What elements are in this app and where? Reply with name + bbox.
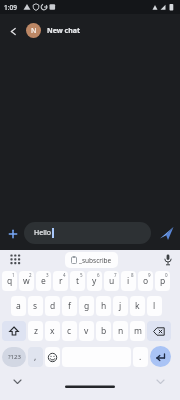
button[interactable]	[163, 254, 173, 266]
button[interactable]: y	[87, 271, 102, 291]
staticText: p	[160, 275, 166, 287]
button[interactable]	[150, 346, 171, 367]
staticText: _subscribe	[79, 256, 112, 265]
staticText: 1	[12, 272, 15, 278]
staticText: c	[67, 325, 72, 337]
staticText: Hello	[34, 228, 51, 238]
button[interactable]: o	[138, 271, 153, 291]
staticText: n	[118, 325, 124, 337]
staticText: h	[101, 300, 107, 312]
staticText: x	[50, 325, 55, 337]
button[interactable]: h	[96, 296, 111, 316]
staticText: 0	[165, 272, 168, 278]
button[interactable]: ?123	[2, 347, 26, 367]
staticText: ,	[34, 351, 37, 363]
staticText: t	[76, 275, 80, 287]
staticText: b	[101, 325, 107, 337]
staticText: w	[23, 275, 30, 287]
staticText: v	[84, 325, 89, 337]
button[interactable]: Hello	[24, 222, 151, 244]
button[interactable]: q	[2, 271, 17, 291]
button[interactable]: f	[62, 296, 77, 316]
button[interactable]: u	[104, 271, 119, 291]
staticText: l	[153, 300, 156, 312]
staticText: u	[109, 275, 115, 287]
button[interactable]: p	[155, 271, 170, 291]
button[interactable]	[6, 24, 20, 38]
button[interactable]	[45, 347, 60, 367]
staticText: q	[7, 275, 13, 287]
button[interactable]: t	[70, 271, 85, 291]
staticText: 4	[63, 272, 66, 278]
staticText: k	[135, 300, 140, 312]
button[interactable]: k	[130, 296, 145, 316]
button[interactable]: a	[11, 296, 26, 316]
staticText: s	[33, 300, 38, 312]
button[interactable]: N	[26, 23, 41, 38]
button[interactable]: _subscribe	[65, 252, 118, 268]
button[interactable]: z	[28, 321, 43, 341]
staticText: y	[92, 275, 97, 287]
button[interactable]: n	[113, 321, 128, 341]
staticText: 2	[29, 272, 32, 278]
staticText: r	[59, 275, 63, 287]
staticText: 1:09	[4, 3, 17, 12]
button[interactable]	[2, 321, 26, 341]
button[interactable]: ,	[28, 347, 43, 367]
button[interactable]: s	[28, 296, 43, 316]
button[interactable]: x	[45, 321, 60, 341]
button[interactable]: g	[79, 296, 94, 316]
staticText: ?123	[8, 353, 21, 361]
staticText: 7	[114, 272, 117, 278]
button[interactable]	[5, 226, 20, 241]
button[interactable]: d	[45, 296, 60, 316]
staticText: o	[143, 275, 149, 287]
button[interactable]: l	[147, 296, 162, 316]
staticText: 9	[148, 272, 151, 278]
staticText: 6	[97, 272, 100, 278]
staticText: j	[119, 300, 122, 312]
button[interactable]: b	[96, 321, 111, 341]
staticText: 5	[80, 272, 83, 278]
staticText: New chat	[47, 26, 80, 36]
staticText: d	[50, 300, 56, 312]
staticText: i	[127, 275, 130, 287]
button[interactable]: c	[62, 321, 77, 341]
button[interactable]	[10, 254, 21, 265]
button[interactable]: .	[133, 347, 148, 367]
button[interactable]: i	[121, 271, 136, 291]
button[interactable]	[147, 321, 171, 341]
staticText: e	[41, 275, 46, 287]
button[interactable]: m	[130, 321, 145, 341]
button[interactable]: j	[113, 296, 128, 316]
staticText: g	[84, 300, 90, 312]
staticText: 3	[46, 272, 49, 278]
button[interactable]: e	[36, 271, 51, 291]
button[interactable]	[157, 224, 175, 242]
staticText: .	[139, 351, 142, 363]
staticText: a	[16, 300, 21, 312]
button[interactable]: r	[53, 271, 68, 291]
staticText: 8	[131, 272, 134, 278]
staticText: N	[31, 26, 37, 36]
button[interactable]: v	[79, 321, 94, 341]
button[interactable]: w	[19, 271, 34, 291]
staticText: z	[34, 325, 38, 337]
staticText: f	[68, 300, 71, 312]
staticText: m	[134, 325, 142, 337]
